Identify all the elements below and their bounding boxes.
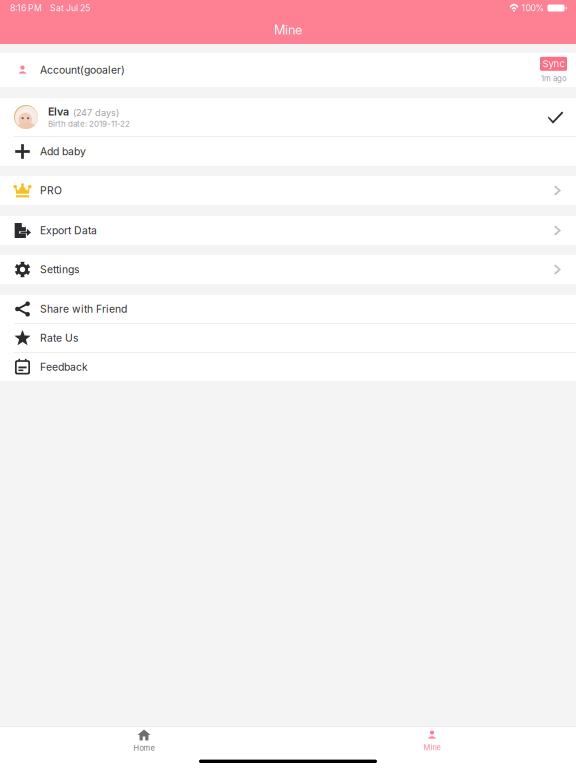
button[interactable]: Add baby: [0, 137, 576, 166]
staticText: Account(gooaler): [40, 64, 125, 76]
staticText: Birth date: 2019-11-22: [48, 119, 130, 129]
button[interactable]: Account(gooaler): [0, 53, 576, 87]
staticText: (247 days): [73, 107, 119, 118]
staticText: Elva: [48, 105, 69, 118]
button[interactable]: Home: [0, 727, 288, 754]
button[interactable]: Share with Friend: [0, 295, 576, 323]
staticText: Home: [133, 743, 154, 752]
staticText: Mine: [423, 743, 440, 752]
staticText: Mine: [274, 22, 302, 38]
button[interactable]: Settings: [0, 255, 576, 284]
staticText: Add baby: [40, 145, 86, 158]
staticText: Rate Us: [40, 332, 78, 344]
staticText: Share with Friend: [40, 303, 127, 315]
staticText: 1m ago: [541, 74, 567, 83]
staticText: Settings: [40, 263, 79, 276]
button[interactable]: Rate Us: [0, 324, 576, 352]
button[interactable]: Mine: [288, 727, 576, 754]
staticText: Export Data: [40, 224, 97, 237]
button[interactable]: Elva: [0, 98, 576, 136]
staticText: 8:16 PM: [10, 3, 42, 13]
button[interactable]: Feedback: [0, 353, 576, 381]
staticText: PRO: [40, 184, 62, 197]
staticText: Feedback: [40, 361, 88, 373]
staticText: 100%: [521, 3, 544, 13]
button[interactable]: PRO: [0, 176, 576, 205]
staticText: Sat Jul 25: [50, 3, 90, 13]
button[interactable]: Export Data: [0, 216, 576, 245]
staticText: Sync: [542, 58, 564, 70]
